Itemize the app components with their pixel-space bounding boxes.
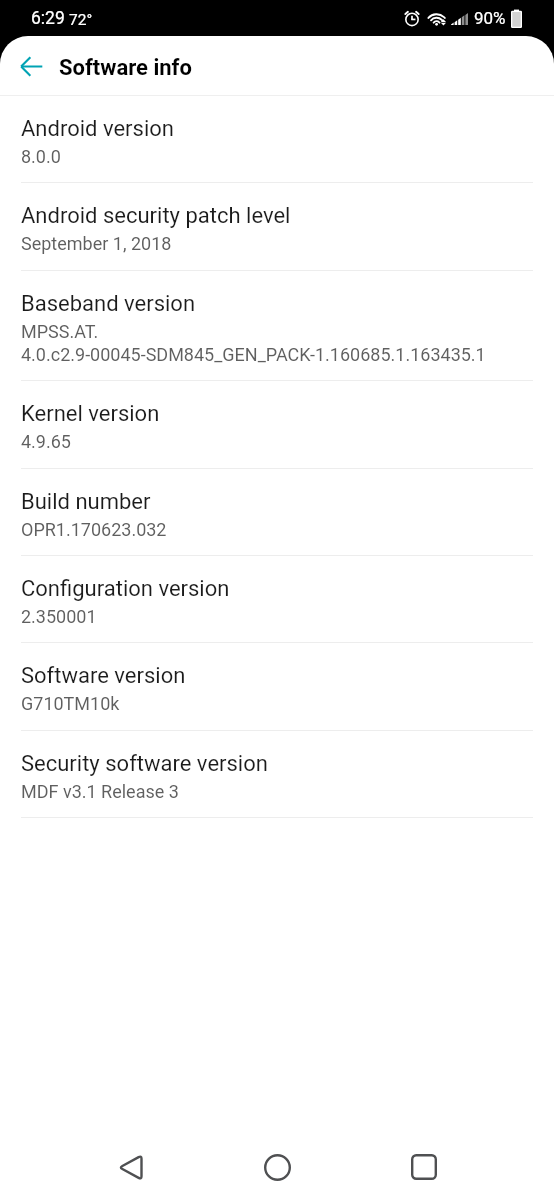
staticText: MDF v3.1 Release 3: [21, 781, 179, 802]
staticText: G710TM10k: [21, 693, 120, 714]
staticText: 4.0.c2.9-00045-SDM845_GEN_PACK-1.160685.…: [21, 344, 486, 365]
button[interactable]: Kernel version: [0, 381, 554, 468]
button[interactable]: Android version: [0, 96, 554, 182]
button[interactable]: Build number: [0, 469, 554, 555]
staticText: 4.9.65: [21, 431, 71, 452]
staticText: Security software version: [21, 751, 268, 777]
staticText: Kernel version: [21, 401, 160, 427]
button[interactable]: Android security patch level: [0, 183, 554, 270]
button[interactable]: Configuration version: [0, 556, 554, 642]
staticText: 2.350001: [21, 606, 97, 627]
staticText: 6:29: [31, 8, 65, 29]
button[interactable]: Baseband version: [0, 271, 554, 380]
button[interactable]: Security software version: [0, 731, 554, 817]
staticText: 72°: [69, 11, 93, 29]
staticText: Configuration version: [21, 576, 230, 602]
staticText: Android security patch level: [21, 203, 291, 229]
staticText: Software info: [59, 55, 192, 81]
staticText: MPSS.AT.: [21, 321, 99, 342]
button[interactable]: Navigate up: [8, 43, 54, 89]
button[interactable]: Recent apps: [394, 1137, 454, 1197]
button[interactable]: Back: [100, 1137, 160, 1197]
staticText: Software version: [21, 663, 186, 689]
staticText: September 1, 2018: [21, 233, 172, 254]
staticText: Baseband version: [21, 291, 196, 317]
staticText: Build number: [21, 489, 151, 515]
staticText: Android version: [21, 116, 174, 142]
button[interactable]: Home: [247, 1137, 307, 1197]
staticText: OPR1.170623.032: [21, 519, 167, 540]
staticText: 8.0.0: [21, 146, 61, 167]
button[interactable]: Software version: [0, 643, 554, 730]
staticText: 90%: [474, 8, 506, 28]
